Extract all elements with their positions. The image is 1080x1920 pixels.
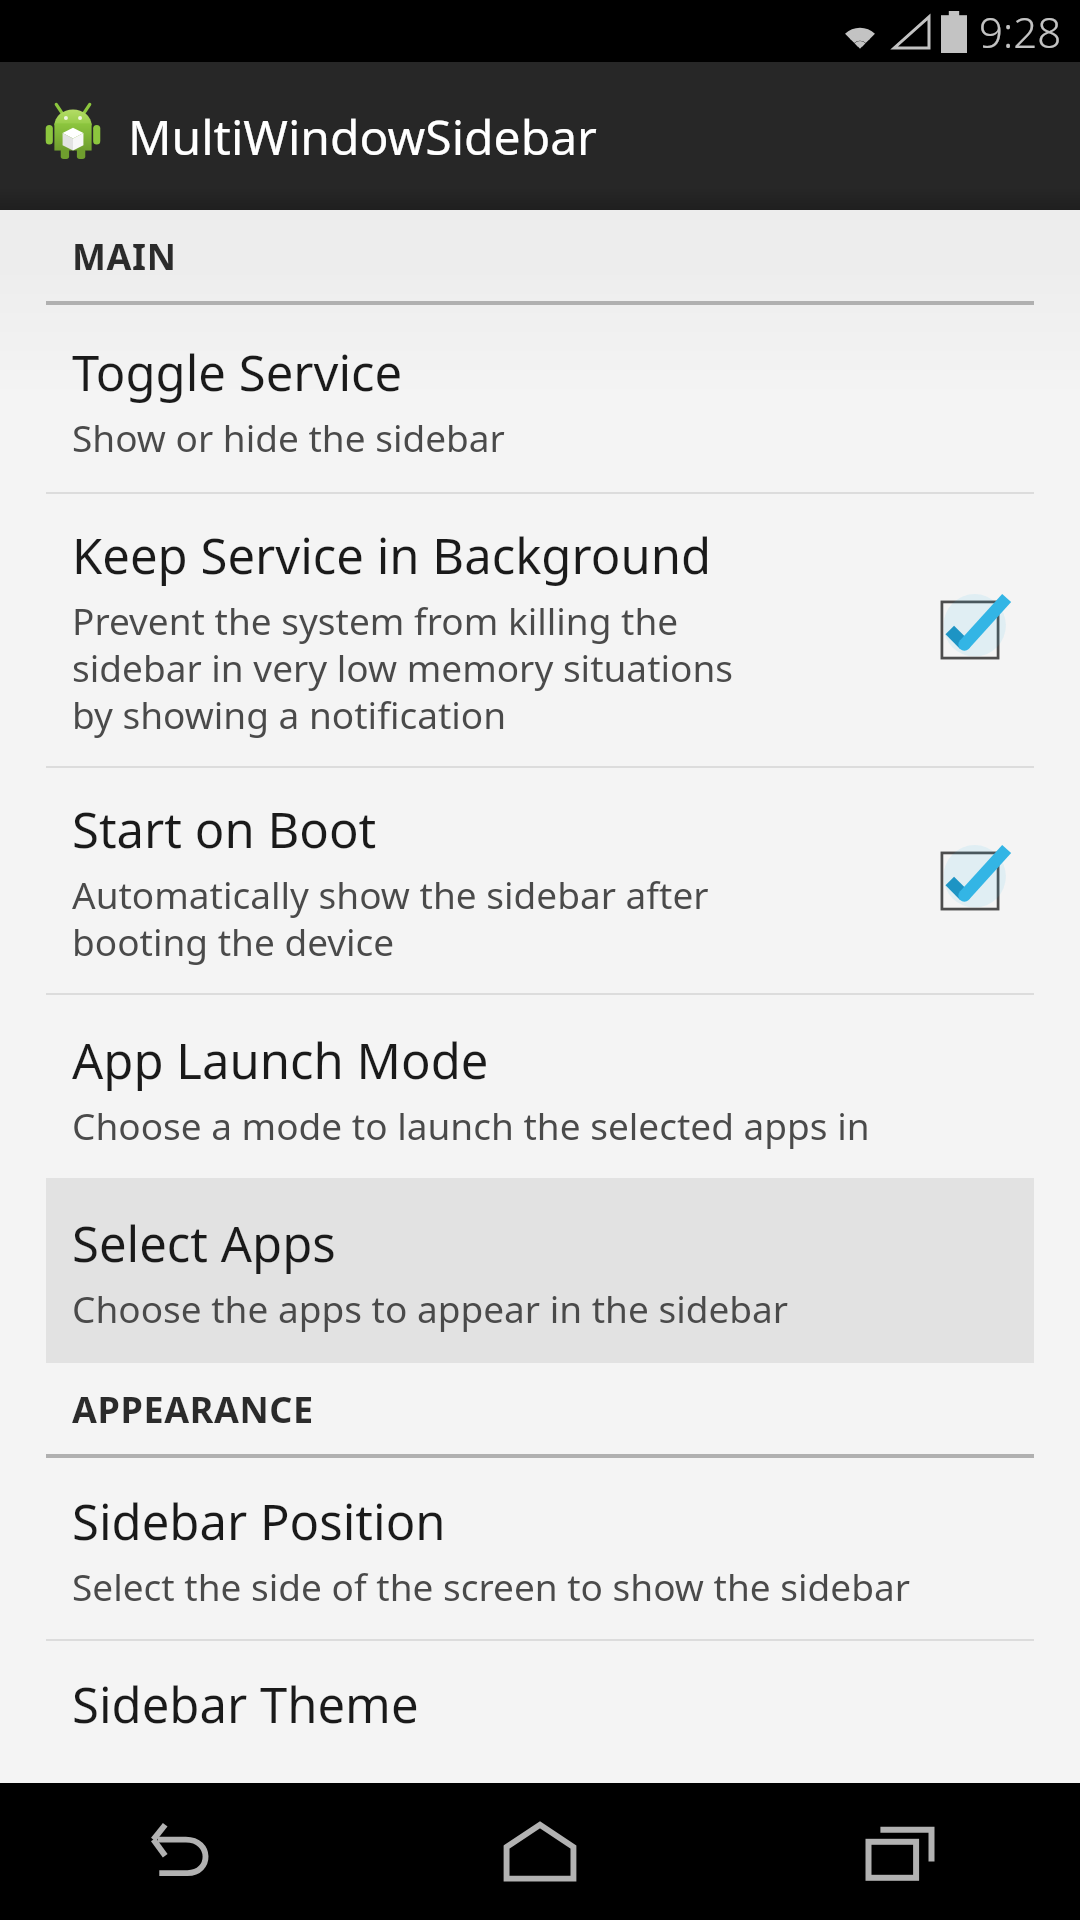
button[interactable]: Toggle Start on Boot [922,833,1018,929]
staticText: Show or hide the sidebar [72,412,505,462]
button[interactable]: Sidebar Position [0,1458,1080,1639]
staticText: Choose the apps to appear in the sidebar [72,1283,789,1333]
button[interactable]: Recent apps [720,1783,1080,1920]
staticText: APPEARANCE [72,1385,314,1434]
staticText: 9:28 [979,3,1062,60]
button[interactable]: Back [0,1783,360,1920]
button[interactable]: Keep Service in Background [0,494,1080,766]
button[interactable]: App Launch Mode [0,995,1080,1178]
button[interactable]: Select Apps [46,1178,1034,1363]
button[interactable]: Home [360,1783,720,1920]
staticText: Sidebar Theme [72,1671,419,1738]
button[interactable]: Start on Boot [0,768,1080,993]
staticText: MultiWindowSidebar [128,104,597,169]
staticText: MAIN [72,232,177,281]
staticText: Prevent the system from killing the side… [72,595,734,740]
staticText: Sidebar Position [72,1488,446,1555]
staticText: Choose a mode to launch the selected app… [72,1100,870,1150]
staticText: Start on Boot [72,796,377,863]
staticText: Keep Service in Background [72,522,712,589]
button[interactable]: Toggle Service [0,305,1080,492]
staticText: Toggle Service [72,339,403,406]
staticText: Select Apps [72,1210,336,1277]
button[interactable]: Toggle Keep Service in Background [922,582,1018,678]
staticText: App Launch Mode [72,1027,489,1094]
staticText: Automatically show the sidebar after boo… [72,869,709,967]
staticText: Select the side of the screen to show th… [72,1561,910,1611]
button[interactable]: Sidebar Theme [0,1641,1080,1768]
